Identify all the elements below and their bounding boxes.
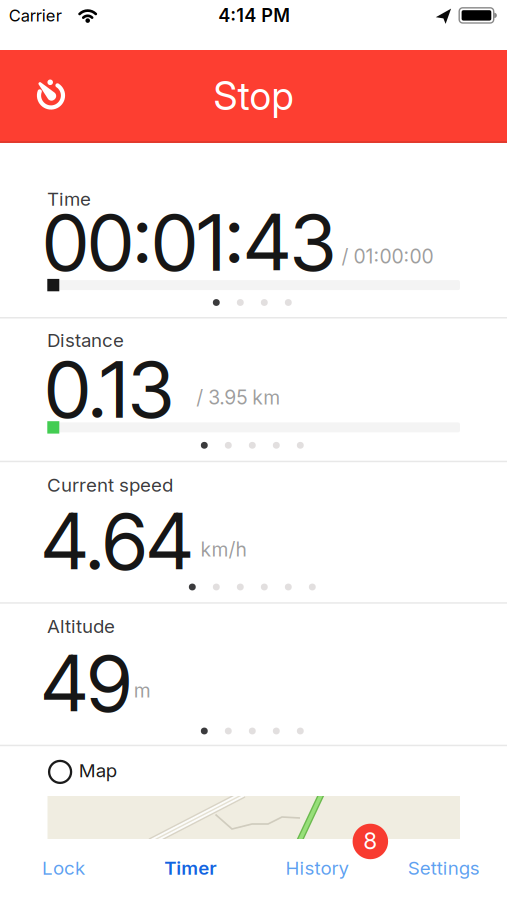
staticText: Current speed — [47, 474, 173, 496]
button[interactable]: Settings — [380, 843, 507, 900]
staticText: / 3.95 km — [196, 386, 280, 409]
staticText: Map — [79, 759, 117, 782]
button[interactable]: Map — [49, 761, 119, 783]
staticText: Distance — [47, 329, 124, 352]
staticText: History — [285, 857, 348, 879]
staticText: Altitude — [47, 615, 115, 638]
staticText: m — [134, 679, 151, 702]
staticText: 4:14 PM — [218, 4, 290, 26]
staticText: Carrier — [9, 5, 62, 25]
staticText: km/h — [200, 538, 246, 561]
button[interactable]: Stop — [213, 72, 293, 119]
staticText: / 01:00:00 — [341, 245, 433, 268]
button[interactable]: Timer — [127, 843, 254, 900]
button[interactable]: Timer — [31, 75, 71, 115]
staticText: Stop — [213, 72, 293, 119]
staticText: Settings — [408, 857, 480, 879]
button[interactable]: Lock — [0, 843, 127, 900]
staticText: 49 — [41, 636, 131, 730]
staticText: 0.13 — [45, 342, 174, 436]
staticText: 4.64 — [41, 494, 192, 588]
button[interactable]: History — [253, 843, 380, 900]
staticText: Time — [47, 188, 91, 210]
staticText: Lock — [42, 857, 85, 879]
staticText: 00:01:43 — [43, 195, 336, 289]
staticText: Timer — [164, 857, 216, 879]
staticText: 8 — [363, 827, 377, 855]
